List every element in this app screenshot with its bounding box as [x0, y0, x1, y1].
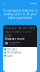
staticText: Now you can see what [5, 26, 35, 30]
staticText: @handle · 2h [9, 43, 17, 45]
staticText: 9:41 [3, 3, 6, 4]
staticText: Lists [7, 54, 12, 57]
staticText: matters most in one place [5, 30, 32, 37]
staticText: Following [7, 51, 21, 54]
staticText: Account name [9, 41, 20, 43]
staticText: devices worldwide [7, 16, 32, 20]
button[interactable]: For you [4, 48, 37, 50]
button[interactable]: Lists [4, 54, 37, 57]
staticText: For you [7, 47, 17, 51]
button[interactable]: Following [4, 51, 37, 54]
staticText: coming soon to all your [3, 12, 36, 16]
staticText: Discover more [5, 37, 25, 41]
staticText: Personalized timeline is [3, 9, 37, 12]
